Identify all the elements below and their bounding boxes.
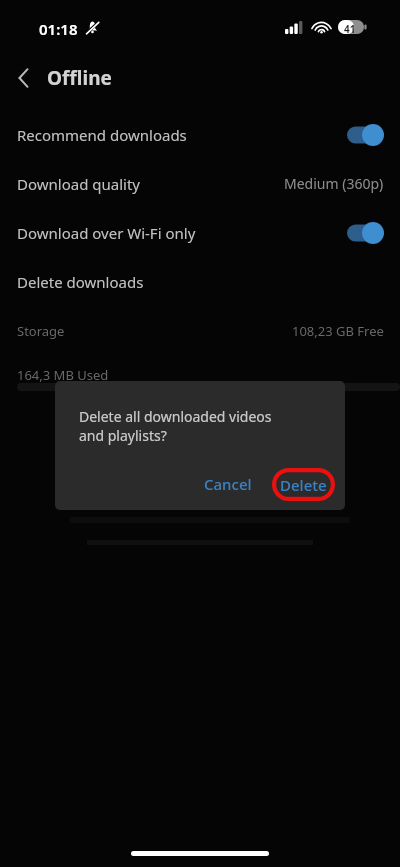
staticText: Download over Wi-Fi only <box>17 223 196 243</box>
staticText: Download quality <box>17 174 140 194</box>
staticText: Offline <box>47 65 112 91</box>
button[interactable]: Download quality <box>0 159 400 208</box>
staticText: Recommend downloads <box>17 125 187 145</box>
staticText: Medium (360p) <box>284 174 384 193</box>
staticText: Delete <box>280 475 327 495</box>
staticText: 108,23 GB Free <box>292 322 384 340</box>
button[interactable]: Back <box>4 58 44 98</box>
staticText: 41 <box>344 22 356 36</box>
staticText: Delete downloads <box>17 272 144 292</box>
button[interactable]: Storage <box>0 306 400 355</box>
staticText: Storage <box>17 322 65 340</box>
button[interactable]: Delete <box>272 468 335 501</box>
staticText: Delete all downloaded videos and playlis… <box>79 407 272 445</box>
staticText: Cancel <box>204 474 252 494</box>
button[interactable]: Cancel <box>192 466 264 502</box>
button[interactable]: Toggle <box>347 124 384 146</box>
button[interactable]: Recommend downloads <box>0 110 400 159</box>
staticText: 164,3 MB Used <box>17 366 109 384</box>
button[interactable]: 164,3 MB Used <box>0 355 400 395</box>
button[interactable]: Toggle <box>347 222 384 244</box>
button[interactable]: Download over Wi-Fi only <box>0 208 400 257</box>
button[interactable]: Delete downloads <box>0 257 400 306</box>
staticText: 01:18 <box>39 19 78 39</box>
